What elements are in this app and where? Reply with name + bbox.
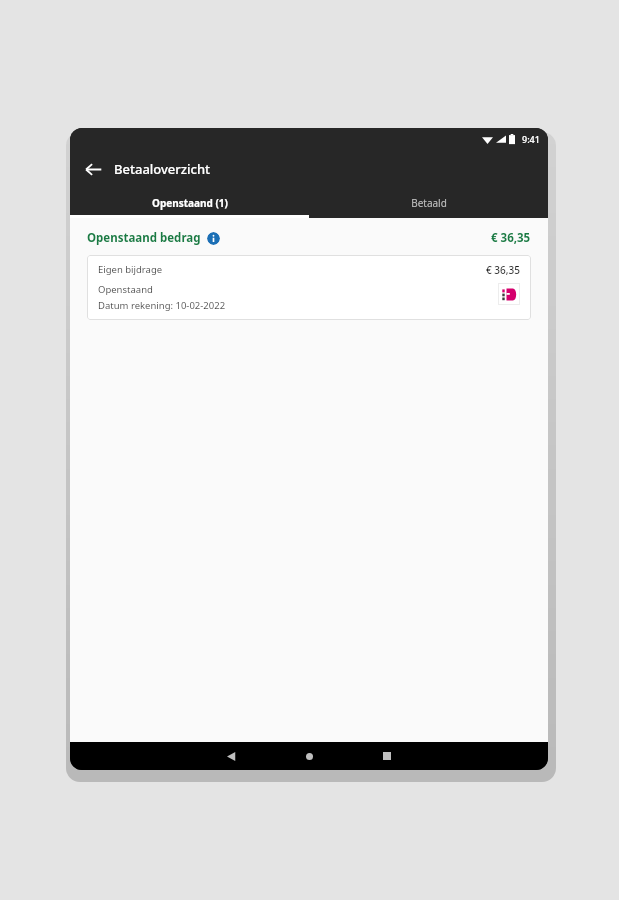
button[interactable]: Betaald bbox=[309, 188, 548, 218]
staticText: Datum rekening: 10-02-2022 bbox=[98, 299, 226, 312]
staticText: Betaaloverzicht bbox=[114, 160, 211, 178]
staticText: Openstaand bedrag bbox=[87, 230, 201, 246]
staticText: Betaald bbox=[411, 196, 447, 210]
button[interactable]: Back bbox=[76, 152, 110, 186]
staticText: € 36,35 bbox=[491, 230, 531, 246]
button[interactable]: Openstaand (1) bbox=[70, 188, 309, 218]
staticText: 9:41 bbox=[522, 133, 540, 145]
button[interactable]: Information bbox=[207, 232, 220, 245]
staticText: Eigen bijdrage bbox=[98, 263, 163, 276]
staticText: Openstaand (1) bbox=[152, 196, 228, 210]
button[interactable]: Recent apps bbox=[348, 742, 426, 770]
staticText: € 36,35 bbox=[486, 263, 520, 277]
button[interactable]: Home bbox=[270, 742, 348, 770]
button[interactable]: Eigen bijdrage bbox=[87, 255, 531, 320]
button[interactable]: Back bbox=[192, 742, 270, 770]
staticText: Openstaand bbox=[98, 283, 153, 296]
